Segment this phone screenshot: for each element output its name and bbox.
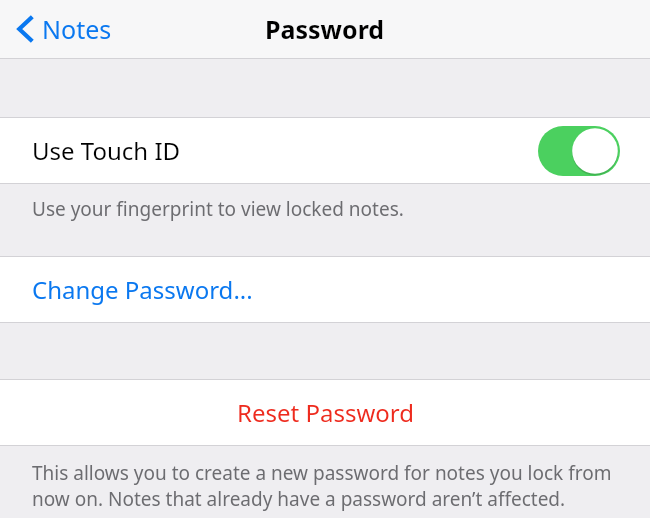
staticText: This allows you to create a new password…	[32, 460, 624, 512]
button[interactable]: Reset Password	[0, 380, 650, 445]
staticText: Notes	[42, 12, 112, 46]
button[interactable]: Notes	[16, 6, 112, 52]
staticText: Use Touch ID	[32, 134, 181, 167]
staticText: Use your fingerprint to view locked note…	[32, 196, 404, 222]
button[interactable]: Use Touch ID toggle	[538, 126, 620, 176]
staticText: Password	[265, 12, 385, 46]
button[interactable]: Change Password...	[0, 257, 650, 322]
button[interactable]: Use Touch ID	[0, 118, 650, 183]
staticText: Reset Password	[237, 396, 414, 429]
staticText: Change Password...	[32, 273, 253, 306]
